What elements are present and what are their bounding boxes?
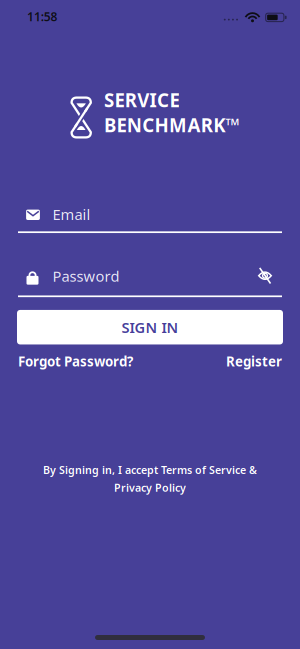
staticText: BENCHMARK™ [104, 112, 240, 137]
staticText: 11:58 [27, 8, 58, 24]
button[interactable]: SIGN IN [17, 310, 283, 344]
staticText: Privacy Policy [114, 481, 186, 495]
button[interactable]: Email [18, 198, 282, 234]
button[interactable]: Register [202, 350, 282, 372]
staticText: Email [52, 205, 90, 224]
staticText: Register [226, 352, 282, 370]
button[interactable]: By Signing in, I accept Terms of Service… [43, 463, 257, 495]
staticText: Forgot Password? [18, 352, 133, 370]
staticText: Password [52, 266, 119, 286]
staticText: SERVICE [104, 88, 179, 112]
button[interactable]: Password [18, 262, 282, 298]
staticText: By Signing in, I accept Terms of Service… [43, 463, 257, 477]
button[interactable]: Forgot Password? [18, 350, 178, 372]
button[interactable] [253, 264, 277, 288]
staticText: SIGN IN [121, 317, 178, 337]
